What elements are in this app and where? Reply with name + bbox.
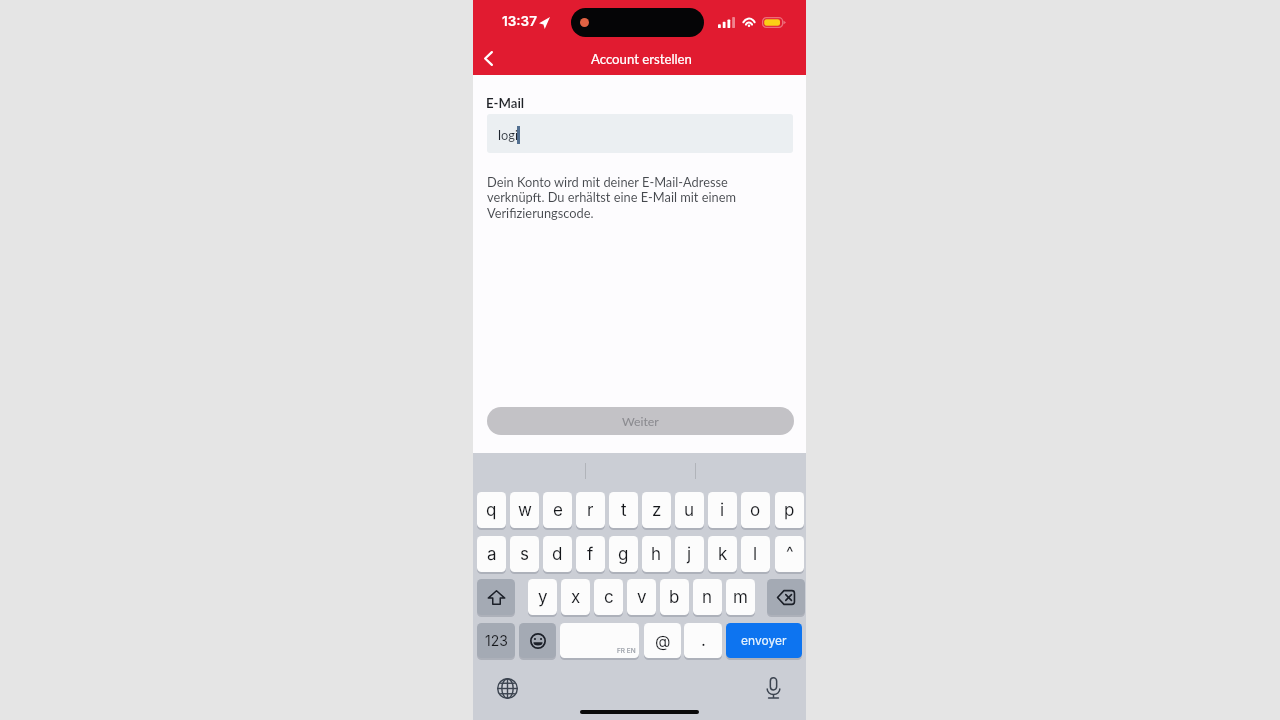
button[interactable]: i bbox=[708, 492, 737, 528]
staticText: x bbox=[571, 587, 581, 608]
button[interactable]: s bbox=[510, 536, 539, 572]
staticText: z bbox=[652, 500, 662, 521]
staticText: b bbox=[669, 587, 680, 608]
button[interactable]: n bbox=[693, 579, 722, 615]
staticText: logi bbox=[498, 127, 518, 142]
staticText: u bbox=[684, 500, 695, 521]
button[interactable]: g bbox=[609, 536, 638, 572]
button[interactable]: c bbox=[594, 579, 623, 615]
staticText: . bbox=[701, 630, 706, 651]
staticText: a bbox=[487, 544, 497, 565]
button[interactable]: t bbox=[609, 492, 638, 528]
button[interactable]: u bbox=[675, 492, 704, 528]
staticText: s bbox=[520, 544, 529, 565]
button[interactable]: j bbox=[675, 536, 704, 572]
staticText: m bbox=[733, 587, 748, 608]
button[interactable]: q bbox=[477, 492, 506, 528]
button[interactable]: d bbox=[543, 536, 572, 572]
staticText: c bbox=[604, 587, 614, 608]
staticText: envoyer bbox=[741, 633, 787, 648]
button[interactable]: y bbox=[528, 579, 557, 615]
button[interactable]: p bbox=[775, 492, 804, 528]
button[interactable]: @ bbox=[644, 623, 681, 658]
button[interactable]: Zurück bbox=[473, 44, 509, 75]
button[interactable]: v bbox=[627, 579, 656, 615]
button[interactable]: r bbox=[576, 492, 605, 528]
button[interactable]: f bbox=[576, 536, 605, 572]
staticText: j bbox=[687, 544, 692, 565]
button[interactable]: logi bbox=[487, 114, 793, 153]
button[interactable]: w bbox=[510, 492, 539, 528]
staticText: k bbox=[718, 544, 728, 565]
button[interactable]: e bbox=[543, 492, 572, 528]
button[interactable]: b bbox=[660, 579, 689, 615]
staticText: 13:37 bbox=[502, 13, 537, 29]
staticText: Weiter bbox=[622, 414, 659, 429]
staticText: o bbox=[750, 500, 761, 521]
staticText: d bbox=[552, 544, 563, 565]
staticText: w bbox=[518, 500, 532, 521]
button[interactable]: ^ bbox=[775, 536, 804, 572]
staticText: l bbox=[753, 544, 758, 565]
staticText: g bbox=[618, 544, 629, 565]
button[interactable]: envoyer bbox=[726, 623, 802, 658]
button[interactable]: Sprache wechseln bbox=[497, 678, 518, 699]
button[interactable]: Löschen bbox=[767, 579, 805, 615]
staticText: q bbox=[486, 500, 497, 521]
button[interactable]: l bbox=[741, 536, 770, 572]
button[interactable]: Umschalt bbox=[477, 579, 515, 615]
button[interactable]: 123 bbox=[477, 623, 515, 658]
button[interactable]: a bbox=[477, 536, 506, 572]
button[interactable]: Emoji bbox=[519, 623, 556, 658]
staticText: i bbox=[720, 500, 725, 521]
staticText: E-Mail bbox=[486, 95, 525, 111]
staticText: p bbox=[784, 500, 795, 521]
button[interactable]: Leertaste bbox=[560, 623, 639, 658]
staticText: ^ bbox=[786, 542, 794, 561]
staticText: h bbox=[651, 544, 662, 565]
staticText: Dein Konto wird mit deiner E-Mail-Adress… bbox=[487, 174, 747, 221]
button[interactable]: m bbox=[726, 579, 755, 615]
button[interactable]: Weiter bbox=[487, 407, 794, 435]
button[interactable]: x bbox=[561, 579, 590, 615]
staticText: y bbox=[538, 587, 548, 608]
staticText: 123 bbox=[485, 632, 508, 649]
staticText: f bbox=[587, 544, 594, 565]
button[interactable]: z bbox=[642, 492, 671, 528]
button[interactable]: Diktieren bbox=[766, 677, 781, 699]
staticText: e bbox=[553, 500, 563, 521]
staticText: v bbox=[637, 587, 647, 608]
staticText: r bbox=[587, 500, 594, 521]
button[interactable]: k bbox=[708, 536, 737, 572]
staticText: @ bbox=[655, 631, 671, 650]
staticText: Account erstellen bbox=[591, 51, 692, 67]
button[interactable]: h bbox=[642, 536, 671, 572]
button[interactable]: o bbox=[741, 492, 770, 528]
staticText: t bbox=[621, 500, 627, 521]
staticText: FR EN bbox=[617, 647, 636, 655]
button[interactable]: . bbox=[684, 623, 722, 658]
staticText: n bbox=[702, 587, 713, 608]
